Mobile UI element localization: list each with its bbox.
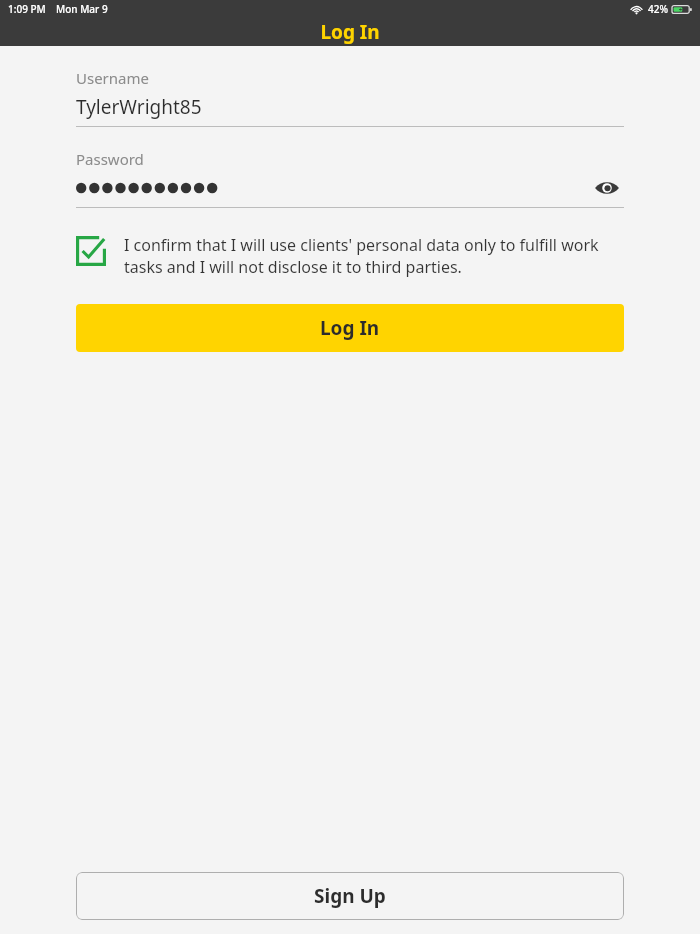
button[interactable]: Show password bbox=[590, 175, 624, 201]
staticText: 1:09 PM bbox=[8, 2, 46, 16]
staticText: I confirm that I will use clients' perso… bbox=[124, 234, 624, 278]
staticText: Sign Up bbox=[314, 883, 386, 909]
staticText: Log In bbox=[320, 315, 380, 341]
button[interactable]: I confirm that I will use clients' perso… bbox=[76, 234, 624, 278]
staticText: Password bbox=[76, 149, 144, 169]
staticText: Log In bbox=[320, 19, 380, 45]
staticText: Username bbox=[76, 68, 149, 88]
staticText: TylerWright85 bbox=[76, 94, 202, 120]
staticText: Mon Mar 9 bbox=[56, 2, 108, 16]
button[interactable]: Log In bbox=[76, 304, 624, 352]
button[interactable]: Sign Up bbox=[76, 872, 624, 920]
staticText: 42% bbox=[648, 2, 668, 16]
